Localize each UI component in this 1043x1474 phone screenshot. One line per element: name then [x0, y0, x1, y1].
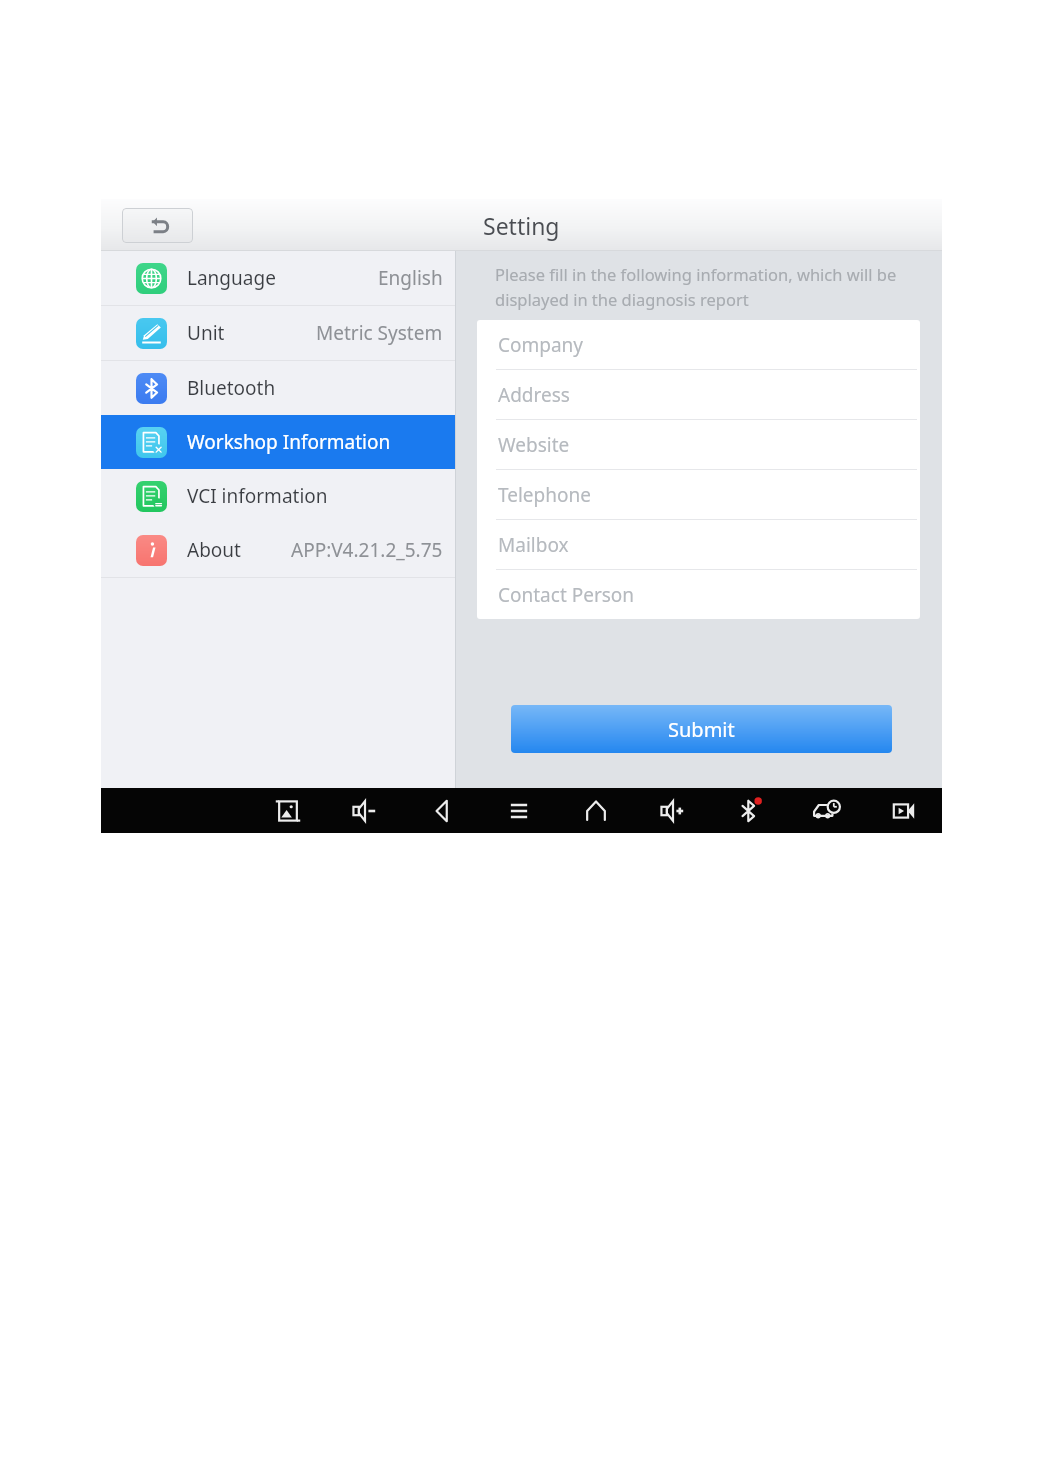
button[interactable]: Back — [413, 788, 471, 833]
button[interactable]: Volume down — [336, 788, 394, 833]
button[interactable]: Workshop Information — [101, 415, 455, 469]
staticText: Submit — [668, 716, 735, 743]
staticText: Mailbox — [498, 532, 569, 558]
button[interactable]: Home — [567, 788, 625, 833]
staticText: Telephone — [498, 482, 591, 508]
staticText: Please fill in the following information… — [495, 263, 920, 311]
staticText: Contact Person — [498, 582, 635, 608]
staticText: About — [187, 537, 241, 563]
button[interactable]: Screenshot — [259, 788, 317, 833]
button[interactable]: Volume up — [644, 788, 702, 833]
staticText: Company — [498, 332, 584, 358]
button[interactable]: Vehicle history — [798, 788, 856, 833]
button[interactable]: Back — [122, 208, 193, 243]
button[interactable]: Mailbox — [477, 520, 920, 569]
button[interactable]: Website — [477, 420, 920, 469]
button[interactable]: Bluetooth — [721, 788, 779, 833]
button[interactable]: Company — [477, 320, 920, 369]
button[interactable]: Bluetooth — [101, 361, 455, 415]
button[interactable]: About — [101, 523, 455, 577]
button[interactable]: Address — [477, 370, 920, 419]
button[interactable]: Menu — [490, 788, 548, 833]
button[interactable]: Telephone — [477, 470, 920, 519]
staticText: Workshop Information — [187, 429, 391, 455]
staticText: Metric System — [316, 320, 443, 346]
staticText: Unit — [187, 320, 225, 346]
staticText: Setting — [483, 210, 560, 241]
staticText: Bluetooth — [187, 375, 276, 401]
button[interactable]: Record — [875, 788, 933, 833]
button[interactable]: Submit — [511, 705, 892, 753]
button[interactable]: Unit — [101, 306, 455, 360]
staticText: Address — [498, 382, 570, 408]
staticText: English — [378, 265, 443, 291]
button[interactable]: Language — [101, 251, 455, 305]
staticText: VCI information — [187, 483, 328, 509]
staticText: APP:V4.21.2_5.75 — [291, 537, 443, 563]
staticText: Website — [498, 432, 570, 458]
staticText: Language — [187, 265, 276, 291]
button[interactable]: VCI information — [101, 469, 455, 523]
button[interactable]: Contact Person — [477, 570, 920, 619]
